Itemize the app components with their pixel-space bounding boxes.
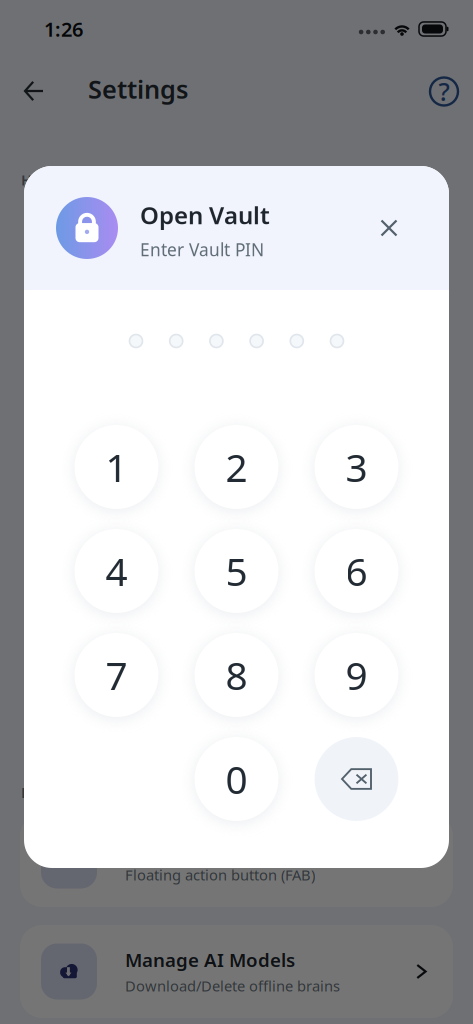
staticText: 2 xyxy=(225,441,247,493)
button[interactable]: 4 xyxy=(74,529,158,613)
staticText: 3 xyxy=(345,441,367,493)
staticText: Open Vault xyxy=(140,199,270,231)
staticText: ? xyxy=(438,74,449,108)
staticText: HIDDEN VAULT xyxy=(21,170,129,189)
staticText: 0 xyxy=(225,753,247,805)
button[interactable]: 8 xyxy=(194,633,278,717)
staticText: Download/Delete offline brains xyxy=(125,976,340,996)
button[interactable]: Delete xyxy=(314,737,398,821)
staticText: Settings xyxy=(88,72,188,106)
button[interactable]: 0 xyxy=(194,737,278,821)
button[interactable]: 5 xyxy=(194,529,278,613)
button[interactable]: 1 xyxy=(74,425,158,509)
button[interactable]: Back xyxy=(14,69,54,109)
staticText: 1 xyxy=(105,441,127,493)
button[interactable]: 9 xyxy=(314,633,398,717)
staticText: Floating action button (FAB) xyxy=(125,865,315,885)
button[interactable]: 6 xyxy=(314,529,398,613)
staticText: 6 xyxy=(345,545,367,597)
staticText: 5 xyxy=(225,545,247,597)
staticText: DEVICE xyxy=(21,782,71,802)
staticText: Enter Vault PIN xyxy=(140,238,264,261)
button[interactable]: 2 xyxy=(194,425,278,509)
staticText: 4 xyxy=(105,545,127,597)
button[interactable]: 3 xyxy=(314,425,398,509)
button[interactable]: Quick Capture xyxy=(20,814,453,907)
staticText: 8 xyxy=(225,649,247,701)
staticText: 9 xyxy=(345,649,367,701)
button[interactable]: Manage AI Models xyxy=(20,925,453,1018)
button[interactable]: Close xyxy=(369,208,409,248)
button[interactable]: 7 xyxy=(74,633,158,717)
staticText: 7 xyxy=(105,649,127,701)
staticText: 1:26 xyxy=(44,16,83,42)
staticText: Manage AI Models xyxy=(125,947,295,972)
button[interactable]: Help xyxy=(424,69,464,109)
